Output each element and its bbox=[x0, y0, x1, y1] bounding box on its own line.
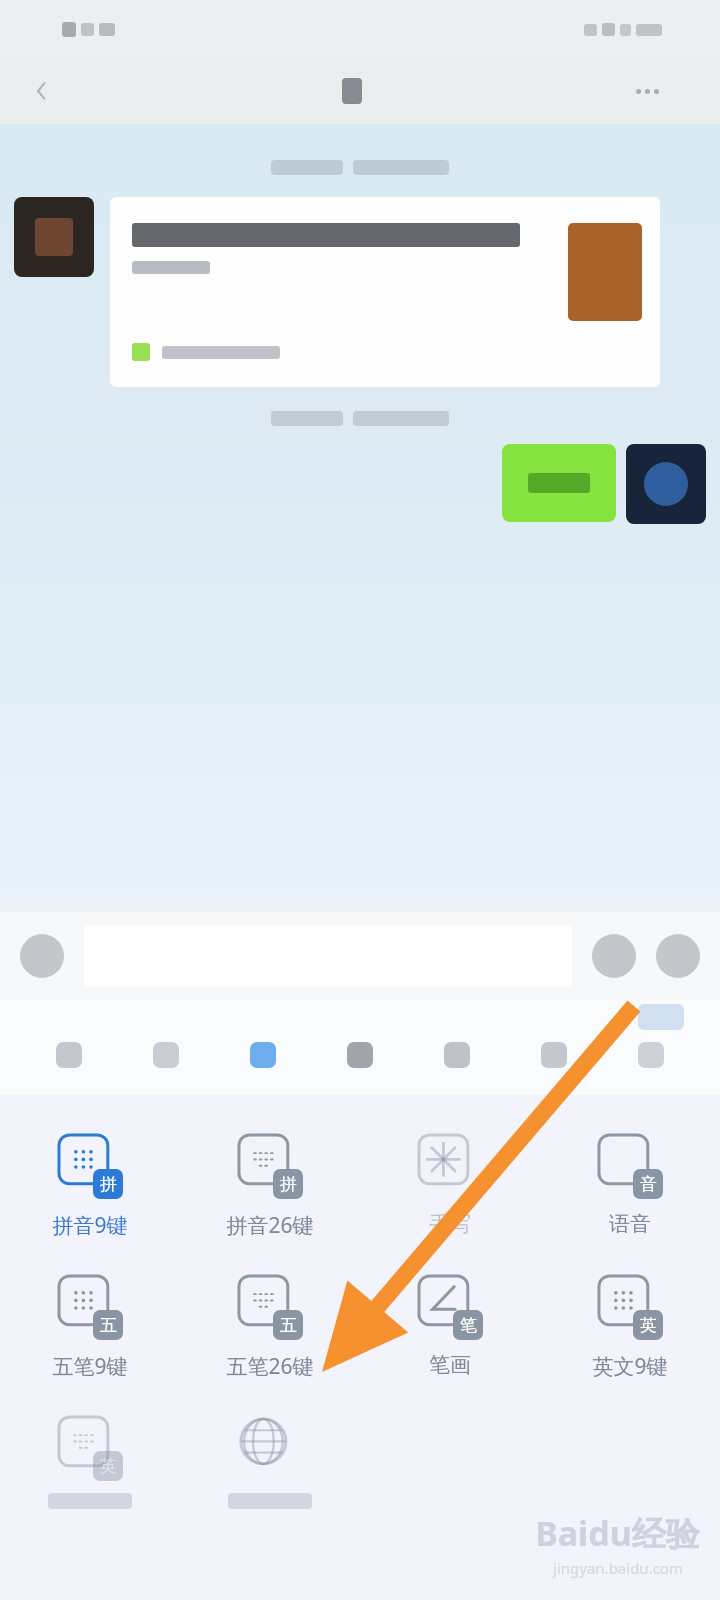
staticText: 音 bbox=[640, 1174, 657, 1195]
button[interactable]: 五 bbox=[20, 1270, 160, 1385]
button[interactable]: Back bbox=[18, 67, 66, 115]
button[interactable]: Input method bbox=[200, 1411, 340, 1513]
button[interactable]: 笔 bbox=[380, 1270, 520, 1382]
staticText: 拼 bbox=[100, 1174, 117, 1195]
staticText: 语音 bbox=[609, 1211, 651, 1237]
staticText: 英 bbox=[640, 1315, 657, 1336]
button[interactable]: 手写 bbox=[380, 1129, 520, 1241]
button[interactable]: 英 bbox=[560, 1270, 700, 1385]
button[interactable]: More bbox=[650, 928, 706, 984]
button[interactable] bbox=[110, 197, 660, 387]
button[interactable] bbox=[502, 444, 616, 522]
button[interactable]: Avatar bbox=[14, 197, 94, 277]
staticText: 英 bbox=[100, 1456, 117, 1477]
button[interactable]: Keyboard layout bbox=[235, 1027, 291, 1083]
button[interactable]: Input method bbox=[20, 1411, 160, 1513]
staticText: Baidu经验 bbox=[535, 1510, 700, 1556]
button[interactable]: 拼 bbox=[20, 1129, 160, 1244]
staticText: 笔 bbox=[460, 1315, 477, 1336]
button[interactable]: Tool 7 bbox=[623, 1027, 679, 1083]
button[interactable]: 音 bbox=[560, 1129, 700, 1241]
staticText: 五笔9键 bbox=[52, 1352, 128, 1381]
button[interactable]: Tool 2 bbox=[138, 1027, 194, 1083]
staticText: 五笔26键 bbox=[226, 1352, 314, 1381]
button[interactable] bbox=[638, 1004, 684, 1030]
staticText: 手写 bbox=[429, 1211, 471, 1237]
staticText: 笔画 bbox=[429, 1352, 471, 1378]
staticText: 拼 bbox=[280, 1174, 297, 1195]
button[interactable]: Tool 1 bbox=[41, 1027, 97, 1083]
button[interactable]: Tool 6 bbox=[526, 1027, 582, 1083]
button[interactable]: 五 bbox=[200, 1270, 340, 1385]
button[interactable]: Avatar bbox=[626, 444, 706, 524]
button[interactable]: Tool 5 bbox=[429, 1027, 485, 1083]
button[interactable]: More bbox=[636, 67, 684, 115]
staticText: 拼音9键 bbox=[52, 1211, 128, 1240]
button[interactable]: Tool 4 bbox=[332, 1027, 388, 1083]
button[interactable]: Voice input bbox=[14, 928, 70, 984]
staticText: 五 bbox=[100, 1315, 117, 1336]
staticText: jingyan.baidu.com bbox=[553, 1558, 683, 1578]
staticText: 五 bbox=[280, 1315, 297, 1336]
button[interactable]: 拼 bbox=[200, 1129, 340, 1244]
staticText: 英文9键 bbox=[592, 1352, 668, 1381]
button[interactable]: Emoji bbox=[586, 928, 642, 984]
staticText: 拼音26键 bbox=[226, 1211, 314, 1240]
